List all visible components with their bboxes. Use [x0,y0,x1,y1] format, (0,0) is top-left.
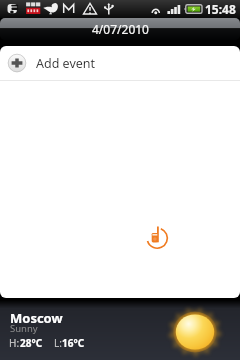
staticText: 4/07/2010 [92,21,149,37]
button[interactable]: Moscow [0,300,240,360]
staticText: 16°C [62,336,85,350]
button[interactable]: Add event [0,46,240,80]
staticText: Sunny [10,322,38,335]
staticText: H: [9,336,20,350]
staticText: 15:48 [205,1,236,17]
staticText: 28°C [20,336,43,350]
staticText: Add event [36,55,96,72]
staticText: L: [54,336,62,350]
staticText: Moscow [10,309,63,327]
other: Sunny weather [169,306,221,358]
